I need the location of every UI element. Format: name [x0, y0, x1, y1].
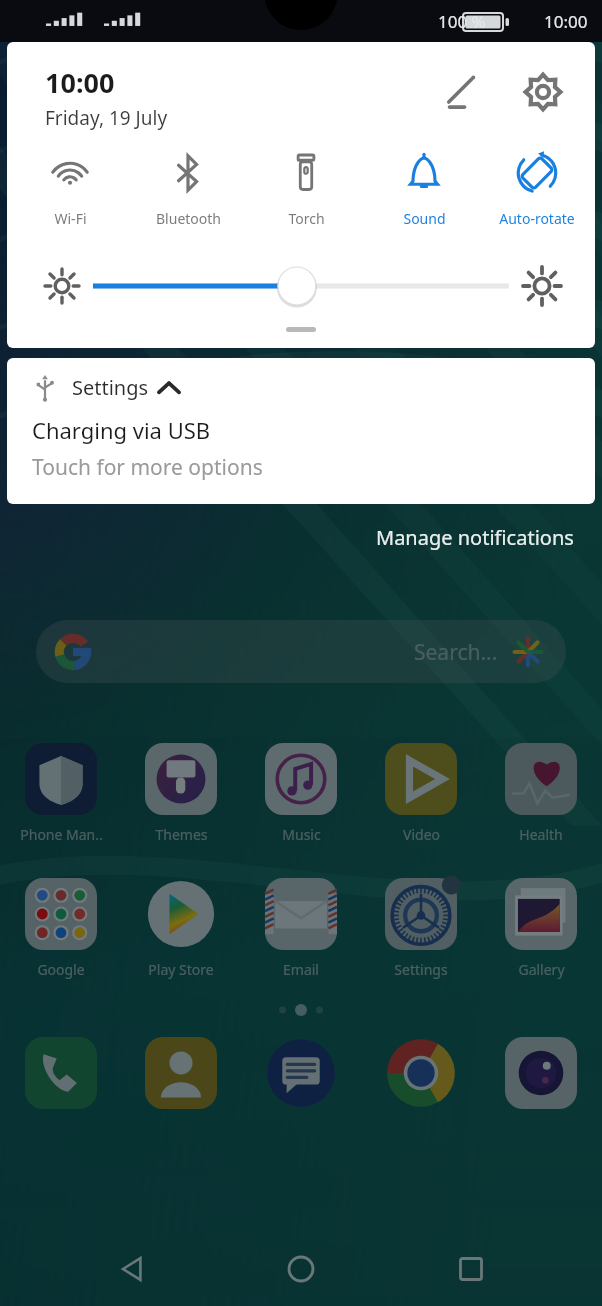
button[interactable]: Themes [122, 743, 240, 844]
staticText: Video [403, 825, 440, 844]
button[interactable]: Music [242, 743, 360, 844]
button[interactable]: Email [242, 878, 360, 979]
button[interactable]: Bluetooth [129, 149, 247, 228]
staticText: Play Store [148, 960, 214, 979]
button[interactable]: Wi-Fi [11, 149, 129, 228]
button[interactable] [482, 1037, 600, 1109]
button[interactable]: Expand [7, 314, 595, 344]
staticText: Torch [288, 209, 325, 228]
button[interactable]: Health [482, 743, 600, 844]
button[interactable] [2, 1037, 120, 1109]
button[interactable] [242, 1037, 360, 1109]
staticText: Friday, 19 July [45, 105, 168, 131]
staticText: Bluetooth [156, 209, 221, 228]
button[interactable]: Brightness [79, 264, 523, 308]
staticText: 100 % [438, 10, 486, 33]
button[interactable]: Play Store [122, 878, 240, 979]
staticText: Gallery [518, 960, 565, 979]
staticText: 10:00 [45, 64, 115, 101]
button[interactable]: Settings [362, 878, 480, 979]
staticText: Music [282, 825, 321, 844]
staticText: Phone Man.. [20, 825, 103, 844]
button[interactable]: Gallery [482, 878, 600, 979]
staticText: Search... [414, 638, 498, 667]
button[interactable]: Video [362, 743, 480, 844]
staticText: Manage notifications [376, 524, 574, 551]
staticText: Settings [394, 960, 448, 979]
button[interactable]: Sound [365, 149, 483, 228]
staticText: Settings [72, 374, 149, 401]
staticText: Themes [155, 825, 208, 844]
button[interactable]: Settings [7, 358, 595, 504]
button[interactable]: Google [2, 878, 120, 979]
staticText: Sound [403, 209, 446, 228]
button[interactable]: Home [263, 1232, 339, 1306]
staticText: Auto-rotate [499, 209, 575, 228]
staticText: Health [519, 825, 563, 844]
staticText: Google [37, 960, 85, 979]
staticText: 10:00 [544, 10, 588, 33]
button[interactable]: Manage notifications [370, 518, 580, 557]
button[interactable]: Search... [36, 620, 566, 683]
button[interactable]: Auto-rotate [483, 149, 591, 228]
staticText: Email [283, 960, 319, 979]
button[interactable] [122, 1037, 240, 1109]
button[interactable]: Phone Man.. [2, 743, 120, 844]
staticText: Wi-Fi [54, 209, 87, 228]
button[interactable]: Recents [433, 1232, 509, 1306]
button[interactable]: Back [94, 1232, 170, 1306]
button[interactable] [362, 1037, 480, 1109]
button[interactable]: Edit [433, 64, 489, 120]
button[interactable]: Torch [247, 149, 365, 228]
button[interactable]: Settings [515, 64, 571, 120]
staticText: Touch for more options [32, 453, 263, 482]
staticText: Charging via USB [32, 415, 211, 445]
